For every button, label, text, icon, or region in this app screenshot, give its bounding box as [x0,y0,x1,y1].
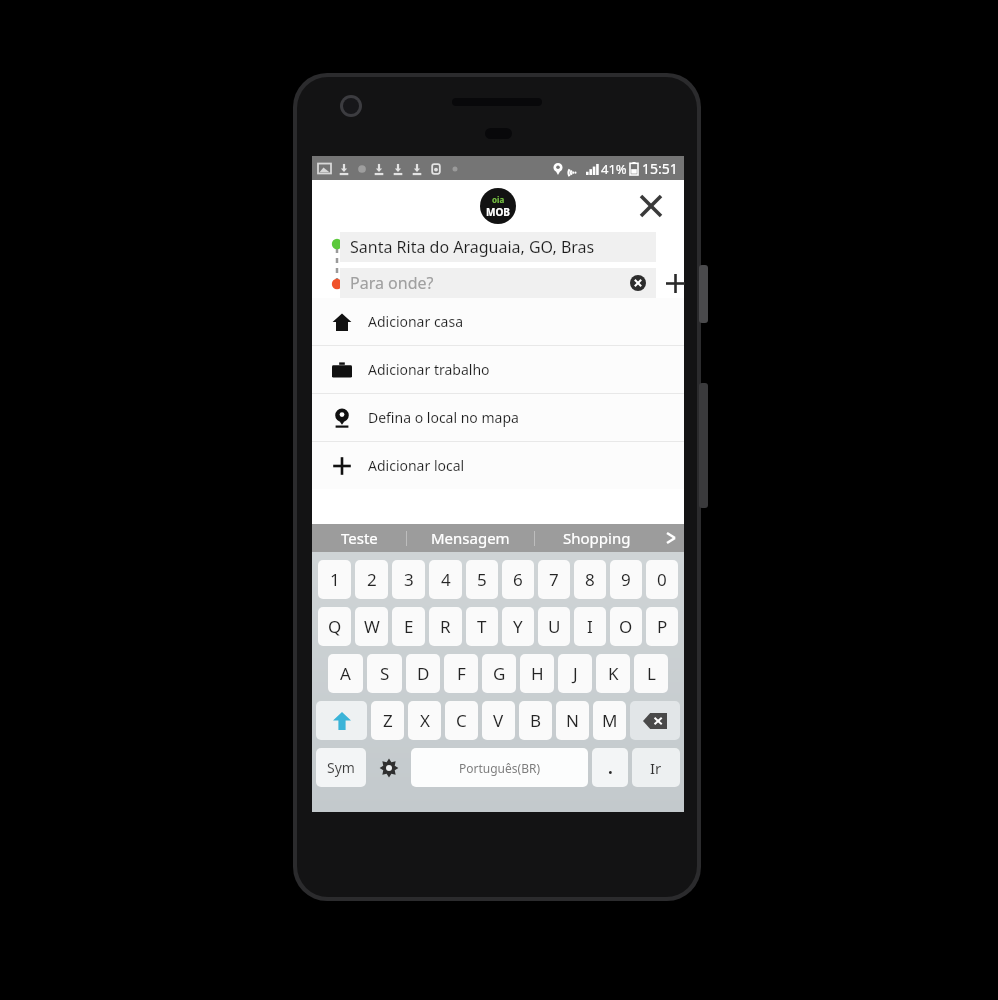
staticText: R [440,615,451,638]
staticText: Y [513,615,523,638]
staticText: Adicionar casa [368,312,464,331]
button[interactable]: Defina o local no mapa [312,394,684,441]
staticText: oia [492,194,505,205]
button[interactable]: G [482,654,516,693]
button[interactable]: 7 [538,560,570,599]
staticText: X [420,709,430,732]
staticText: 7 [549,568,559,591]
button[interactable]: Teste [312,524,406,552]
button[interactable]: oia [480,188,516,224]
staticText: A [340,662,351,685]
button[interactable]: Português(BR) [411,748,588,787]
button[interactable]: B [519,701,552,740]
staticText: O [619,615,633,638]
button[interactable]: 5 [466,560,498,599]
button[interactable]: H [520,654,554,693]
staticText: U [548,615,561,638]
staticText: F [457,662,466,685]
button[interactable]: R [429,607,462,646]
button[interactable]: Q [318,607,351,646]
button[interactable]: P [646,607,678,646]
button[interactable]: 3 [392,560,425,599]
button[interactable]: Mais sugestões [658,524,684,552]
staticText: 0 [657,568,667,591]
button[interactable]: 9 [610,560,642,599]
staticText: W [364,615,380,638]
button[interactable]: Y [502,607,534,646]
button[interactable]: M [593,701,626,740]
staticText: Português(BR) [459,760,541,776]
staticText: Adicionar local [368,456,465,475]
staticText: V [493,709,504,732]
button[interactable]: U [538,607,570,646]
staticText: N [566,709,579,732]
staticText: K [608,662,619,685]
button[interactable]: T [466,607,498,646]
button[interactable]: 2 [355,560,388,599]
button[interactable]: Shift [316,701,367,740]
staticText: I [587,615,593,638]
button[interactable]: Adicionar parada [660,268,690,298]
button[interactable]: F [444,654,478,693]
button[interactable]: O [610,607,642,646]
button[interactable]: A [328,654,363,693]
staticText: MOB [486,205,510,219]
staticText: Sym [327,758,355,777]
button[interactable]: Z [371,701,404,740]
staticText: D [417,662,430,685]
staticText: 3 [404,568,414,591]
button[interactable]: 4 [429,560,462,599]
button[interactable]: S [367,654,402,693]
button[interactable]: W [355,607,388,646]
staticText: B [530,709,542,732]
staticText: Santa Rita do Araguaia, GO, Bras [350,236,595,258]
staticText: 2 [367,568,377,591]
staticText: E [404,615,414,638]
button[interactable]: Apagar [630,701,680,740]
staticText: 6 [513,568,523,591]
button[interactable]: K [596,654,630,693]
staticText: 1 [330,568,340,591]
button[interactable]: Ir [632,748,680,787]
staticText: Adicionar trabalho [368,360,490,379]
button[interactable]: 6 [502,560,534,599]
button[interactable]: D [406,654,440,693]
staticText: 9 [621,568,631,591]
button[interactable]: L [634,654,668,693]
staticText: T [477,615,487,638]
button[interactable]: Santa Rita do Araguaia, GO, Bras [340,232,656,262]
button[interactable]: X [408,701,441,740]
staticText: Q [328,615,342,638]
button[interactable]: 1 [318,560,351,599]
button[interactable]: . [592,748,628,787]
button[interactable]: V [482,701,515,740]
staticText: Para onde? [350,272,434,294]
button[interactable]: Limpar [628,273,648,293]
button[interactable]: Adicionar local [312,442,684,489]
button[interactable]: J [558,654,592,693]
staticText: 5 [477,568,487,591]
staticText: S [380,662,390,685]
button[interactable]: 0 [646,560,678,599]
staticText: J [573,662,578,685]
button[interactable]: Adicionar casa [312,298,684,345]
staticText: Mensagem [431,528,510,548]
button[interactable]: E [392,607,425,646]
staticText: C [456,709,467,732]
button[interactable]: Mensagem [407,524,534,552]
button[interactable]: N [556,701,589,740]
staticText: 15:51 [642,159,678,178]
staticText: H [531,662,544,685]
button[interactable]: 8 [574,560,606,599]
button[interactable]: Adicionar trabalho [312,346,684,393]
button[interactable]: Sym [316,748,366,787]
staticText: . [608,756,613,779]
button[interactable]: Fechar [634,189,668,223]
button[interactable]: C [445,701,478,740]
button[interactable]: Para onde? [340,268,656,298]
button[interactable]: I [574,607,606,646]
button[interactable]: Shopping [535,524,658,552]
staticText: Teste [341,528,378,548]
staticText: 8 [585,568,595,591]
button[interactable]: Configurações [370,748,407,787]
